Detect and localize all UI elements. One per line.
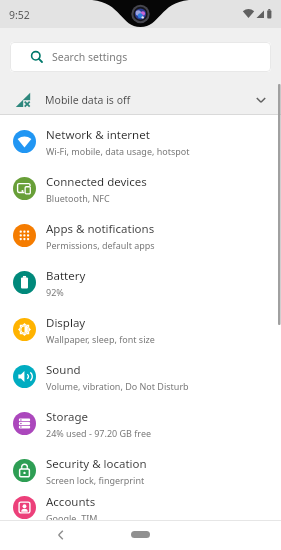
button[interactable]: Mobile data is off bbox=[0, 85, 281, 114]
staticText: Permissions, default apps bbox=[46, 239, 155, 251]
button[interactable]: Sound bbox=[0, 353, 281, 400]
staticText: Mobile data is off bbox=[45, 93, 131, 107]
staticText: Screen lock, fingerprint bbox=[46, 474, 145, 486]
button[interactable] bbox=[131, 531, 150, 538]
button[interactable]: Apps & notifications bbox=[0, 212, 281, 259]
button[interactable]: Connected devices bbox=[0, 165, 281, 212]
staticText: Apps & notifications bbox=[46, 221, 155, 237]
staticText: Bluetooth, NFC bbox=[46, 192, 110, 204]
staticText: Connected devices bbox=[46, 174, 147, 190]
staticText: 24% used - 97.20 GB free bbox=[46, 427, 152, 439]
staticText: 92% bbox=[46, 286, 64, 298]
button[interactable]: Network & internet bbox=[0, 118, 281, 165]
button[interactable]: Accounts bbox=[0, 494, 281, 520]
staticText: Network & internet bbox=[46, 127, 150, 143]
staticText: Volume, vibration, Do Not Disturb bbox=[46, 380, 189, 392]
button[interactable]: Security & location bbox=[0, 447, 281, 494]
button[interactable]: Battery bbox=[0, 259, 281, 306]
staticText: Storage bbox=[46, 409, 88, 425]
staticText: Wallpaper, sleep, font size bbox=[46, 333, 155, 345]
button[interactable]: Storage bbox=[0, 400, 281, 447]
staticText: Security & location bbox=[46, 456, 147, 472]
button[interactable] bbox=[56, 530, 66, 540]
staticText: Google, TIM bbox=[46, 512, 98, 520]
staticText: 9:52 bbox=[9, 8, 30, 22]
button[interactable]: Search settings bbox=[10, 42, 271, 72]
button[interactable]: Display bbox=[0, 306, 281, 353]
staticText: Sound bbox=[46, 362, 81, 378]
staticText: Battery bbox=[46, 268, 86, 284]
staticText: Search settings bbox=[52, 50, 128, 64]
staticText: Accounts bbox=[46, 494, 96, 510]
staticText: Wi-Fi, mobile, data usage, hotspot bbox=[46, 145, 190, 157]
staticText: Display bbox=[46, 315, 86, 331]
